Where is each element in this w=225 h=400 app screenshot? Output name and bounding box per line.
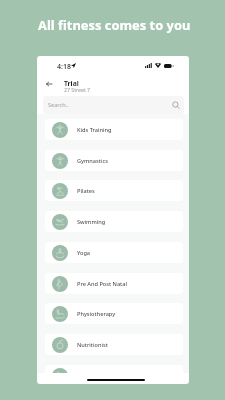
button[interactable]: Swimming <box>45 211 183 232</box>
staticText: 4:18 <box>57 62 71 72</box>
staticText: Nutritionist <box>77 341 108 349</box>
button[interactable]: Gymnastics <box>45 150 183 171</box>
staticText: Trial <box>64 79 79 88</box>
button[interactable]: Search.. <box>43 96 184 114</box>
staticText: Search.. <box>48 101 69 109</box>
button[interactable]: Yoga <box>45 242 183 263</box>
button[interactable]: Pilates <box>45 180 183 201</box>
staticText: Yoga <box>77 249 91 257</box>
staticText: Kids Training <box>77 126 112 134</box>
button[interactable]: Pre And Post Natal <box>45 273 183 294</box>
staticText: 27 Street 7 <box>64 86 91 93</box>
button[interactable]: Massage <box>45 365 183 373</box>
button[interactable]: Back <box>42 77 56 91</box>
staticText: Swimming <box>77 218 106 226</box>
button[interactable]: Kids Training <box>45 119 183 140</box>
staticText: Physiotherapy <box>77 310 116 318</box>
button[interactable]: Physiotherapy <box>45 303 183 324</box>
staticText: All fitness comes to you <box>38 16 191 34</box>
staticText: Pre And Post Natal <box>77 280 127 288</box>
staticText: Pilates <box>77 187 95 195</box>
staticText: Gymnastics <box>77 157 108 165</box>
button[interactable]: Nutritionist <box>45 334 183 355</box>
